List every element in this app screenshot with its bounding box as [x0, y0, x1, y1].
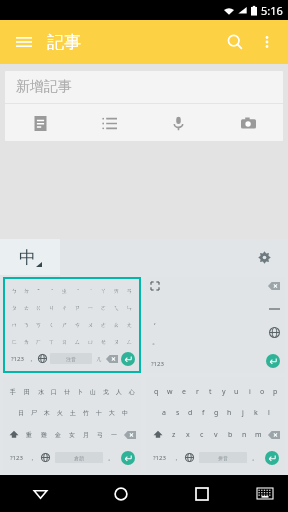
staticText: 5:16: [261, 3, 283, 18]
staticText: ㄝ: [100, 338, 107, 346]
staticText: 中: [122, 409, 128, 417]
staticText: 重: [26, 431, 32, 439]
staticText: h: [227, 408, 232, 418]
staticText: ㄌ: [23, 338, 30, 346]
staticText: 拼音: [218, 455, 228, 461]
staticText: 手: [10, 388, 16, 396]
staticText: ㄋ: [23, 321, 30, 329]
staticText: ㄈ: [11, 338, 18, 346]
staticText: 心: [129, 388, 135, 396]
staticText: z: [172, 430, 176, 440]
staticText: ?123: [151, 360, 164, 368]
staticText: ，: [29, 454, 35, 462]
staticText: ㄇ: [11, 321, 18, 329]
button[interactable]: 手: [3, 377, 141, 473]
staticText: ㄖ: [61, 338, 68, 346]
staticText: ㄑ: [48, 321, 55, 329]
staticText: 人: [116, 388, 122, 396]
button[interactable]: Back: [0, 475, 80, 512]
staticText: i: [249, 387, 251, 397]
staticText: e: [182, 387, 186, 397]
staticText: 土: [70, 409, 76, 417]
staticText: 金: [55, 431, 61, 439]
button[interactable]: Settings: [250, 243, 278, 271]
button[interactable]: New list: [92, 106, 126, 140]
staticText: ㄐ: [48, 304, 55, 312]
staticText: q: [154, 387, 159, 397]
staticText: 山: [90, 388, 96, 396]
staticText: j: [242, 408, 244, 418]
staticText: 一: [111, 431, 117, 439]
staticText: ，: [173, 454, 179, 462]
staticText: w: [167, 387, 173, 397]
staticText: 竹: [83, 409, 89, 417]
staticText: ㄣ: [126, 304, 133, 312]
button[interactable]: New text note: [23, 106, 57, 140]
staticText: y: [222, 387, 226, 397]
staticText: ㄏ: [35, 338, 42, 346]
staticText: ㄘ: [74, 321, 81, 329]
button[interactable]: ,: [146, 277, 285, 373]
staticText: 大: [109, 409, 115, 417]
staticText: 倉頡: [74, 455, 84, 461]
button[interactable]: 中: [0, 239, 60, 275]
staticText: 日: [18, 409, 24, 417]
staticText: 弓: [97, 431, 103, 439]
button[interactable]: More options: [252, 27, 282, 57]
staticText: ㄨ: [87, 321, 94, 329]
staticText: ㄊ: [23, 304, 30, 312]
staticText: 尸: [31, 409, 37, 417]
staticText: ㄆ: [11, 304, 18, 312]
staticText: ?123: [11, 355, 24, 363]
button[interactable]: Change keyboard: [242, 475, 288, 512]
button[interactable]: New photo note: [231, 106, 265, 140]
staticText: ˙: [90, 287, 92, 295]
staticText: 戈: [103, 388, 109, 396]
staticText: a: [162, 408, 166, 418]
staticText: ㄉ: [23, 287, 30, 295]
staticText: 水: [38, 388, 44, 396]
button[interactable]: 新增記事: [5, 71, 283, 103]
staticText: 。: [108, 454, 114, 462]
staticText: 卜: [77, 388, 83, 396]
button[interactable]: ㄅ: [5, 279, 139, 371]
staticText: 中: [19, 247, 36, 268]
staticText: t: [209, 387, 212, 397]
staticText: ㄢ: [126, 287, 133, 295]
staticText: 。: [152, 337, 159, 346]
staticText: d: [188, 408, 193, 418]
staticText: ㄟ: [113, 304, 120, 312]
staticText: ㄕ: [61, 321, 68, 329]
staticText: s: [176, 408, 180, 418]
button[interactable]: Recent apps: [161, 475, 242, 512]
button[interactable]: Home: [80, 475, 161, 512]
staticText: b: [228, 430, 233, 440]
staticText: r: [196, 387, 199, 397]
staticText: ˊ: [77, 287, 79, 295]
staticText: ㄥ: [126, 338, 133, 346]
button[interactable]: q: [146, 377, 285, 473]
staticText: ㄙ: [74, 338, 81, 346]
staticText: ㄦ: [96, 355, 103, 363]
staticText: ㄠ: [113, 321, 120, 329]
staticText: ，: [28, 355, 34, 363]
staticText: v: [214, 430, 218, 440]
staticText: x: [186, 430, 190, 440]
staticText: ㄅ: [11, 287, 18, 295]
button[interactable]: New voice note: [161, 106, 195, 140]
staticText: 木: [44, 409, 50, 417]
button[interactable]: Search: [218, 25, 252, 59]
staticText: p: [273, 387, 278, 397]
staticText: 記事: [47, 32, 81, 53]
staticText: 口: [51, 388, 57, 396]
button[interactable]: Open navigation drawer: [10, 28, 38, 56]
staticText: ?123: [153, 454, 166, 462]
staticText: ㄗ: [74, 304, 81, 312]
staticText: c: [200, 430, 204, 440]
staticText: ㄍ: [35, 304, 42, 312]
staticText: ㄚ: [100, 287, 107, 295]
staticText: 難: [41, 431, 47, 439]
staticText: 田: [24, 388, 30, 396]
staticText: 。: [252, 454, 258, 462]
staticText: ,: [154, 317, 156, 327]
